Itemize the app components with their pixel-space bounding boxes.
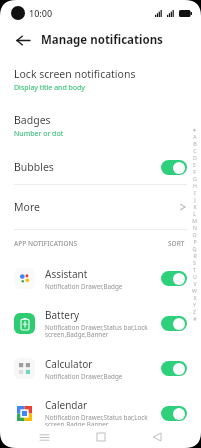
staticText: Lock screen notifications (14, 67, 136, 81)
button[interactable]: More (0, 185, 201, 229)
staticText: L (193, 210, 196, 217)
staticText: More (14, 200, 179, 214)
button[interactable]: SORT (166, 237, 187, 250)
button[interactable]: Back (145, 426, 169, 448)
button[interactable]: Home (89, 426, 113, 448)
staticText: O (192, 231, 197, 238)
staticText: Assistant (45, 267, 88, 281)
staticText: K (193, 203, 197, 210)
button[interactable]: Back (12, 29, 34, 51)
staticText: X (193, 294, 197, 301)
staticText: B (193, 140, 197, 147)
staticText: Badges (14, 113, 51, 127)
staticText: Number or dot (14, 129, 64, 139)
staticText: P (193, 238, 197, 245)
staticText: Notification Drawer,Badge (45, 282, 123, 291)
staticText: I (194, 189, 196, 196)
button[interactable]: Calculator (0, 346, 201, 391)
staticText: Bubbles (14, 160, 161, 174)
staticText: Z (193, 308, 196, 315)
staticText: Battery (45, 308, 80, 322)
button[interactable]: Recents (32, 426, 56, 448)
button[interactable]: Bubbles (0, 150, 201, 184)
staticText: W (192, 287, 197, 294)
staticText: Notification Drawer,Status bar,Lock scre… (45, 413, 148, 429)
staticText: SORT (168, 239, 185, 248)
staticText: R (193, 252, 197, 259)
staticText: N (193, 224, 197, 231)
staticText: J (194, 196, 196, 203)
button[interactable]: Lock screen notifications (0, 62, 201, 98)
staticText: T (193, 266, 196, 273)
staticText: H (193, 182, 197, 189)
staticText: 10:00 (29, 7, 53, 19)
staticText: Calendar (45, 398, 88, 412)
staticText: D (193, 154, 197, 161)
button[interactable]: Assistant (0, 256, 201, 301)
button[interactable]: Calendar (0, 391, 201, 436)
staticText: Manage notifications (41, 32, 163, 48)
staticText: Notification Drawer,Status bar,Lock scre… (45, 323, 148, 339)
button[interactable]: Call Management (0, 436, 201, 448)
staticText: Notification Drawer,Badge (45, 372, 123, 381)
staticText: ✦ (192, 127, 197, 133)
button[interactable]: Badges (0, 108, 201, 144)
staticText: M (192, 217, 197, 224)
button[interactable]: Battery (0, 301, 201, 346)
staticText: Calculator (45, 357, 93, 371)
staticText: Call Management (45, 436, 128, 448)
staticText: V (193, 280, 197, 287)
staticText: APP NOTIFICATIONS (14, 239, 166, 248)
staticText: S (193, 259, 196, 266)
staticText: Q (192, 245, 197, 252)
staticText: U (193, 273, 197, 280)
staticText: G (193, 175, 197, 182)
staticText: # (193, 315, 197, 322)
staticText: E (193, 161, 196, 168)
staticText: F (193, 168, 196, 175)
staticText: Y (193, 301, 196, 308)
staticText: Display title and body (14, 83, 85, 93)
staticText: A (193, 133, 197, 140)
staticText: C (193, 147, 197, 154)
